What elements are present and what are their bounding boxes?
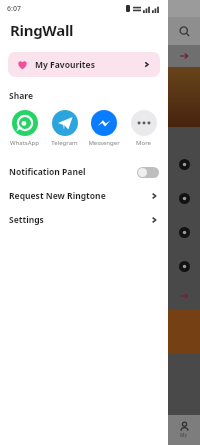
button[interactable]: Settings: [0, 208, 168, 232]
staticText: WhatsApp: [10, 139, 39, 147]
staticText: My: [180, 432, 188, 439]
button[interactable]: Notification Panel toggle: [137, 167, 159, 178]
button[interactable]: Request New Ringtone: [0, 184, 168, 208]
button[interactable]: My Favourites: [8, 52, 160, 77]
staticText: Settings: [9, 214, 44, 226]
staticText: RingWall: [10, 20, 74, 40]
staticText: Request New Ringtone: [9, 190, 106, 202]
staticText: Telegram: [51, 139, 78, 147]
staticText: More: [136, 139, 151, 147]
button[interactable]: WhatsApp: [5, 110, 44, 147]
staticText: My Favourites: [35, 59, 95, 71]
button[interactable]: Messenger: [84, 110, 123, 147]
button[interactable]: More: [124, 110, 163, 147]
staticText: Notification Panel: [9, 166, 86, 178]
staticText: 6:07: [7, 4, 21, 14]
button[interactable]: Telegram: [45, 110, 84, 147]
button[interactable]: Notification Panel: [0, 160, 168, 184]
staticText: Messenger: [88, 139, 120, 147]
staticText: Share: [9, 90, 34, 102]
